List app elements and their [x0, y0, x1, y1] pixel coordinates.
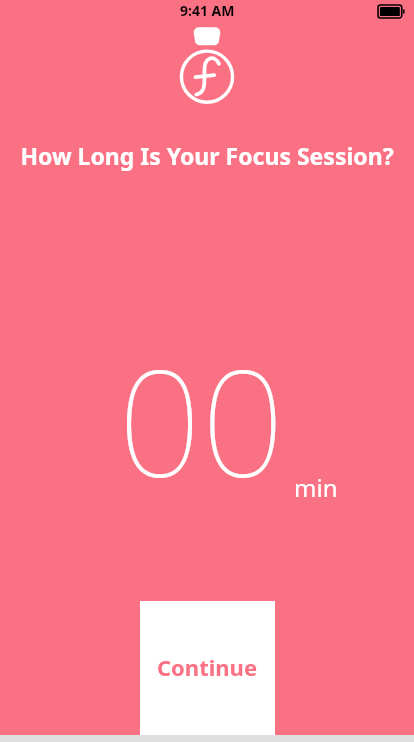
staticText: 00	[118, 321, 285, 520]
staticText: Continue	[157, 652, 258, 682]
other: Focus logo	[171, 24, 243, 114]
button[interactable]: Continue	[140, 601, 275, 735]
staticText: min	[294, 471, 338, 504]
staticText: How Long Is Your Focus Session?	[12, 140, 402, 171]
staticText: 9:41 AM	[180, 1, 235, 20]
